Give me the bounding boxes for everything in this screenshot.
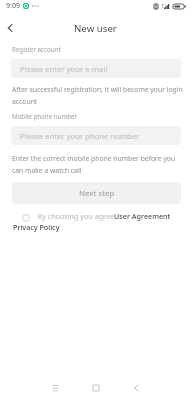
staticText: By choosing you agreeUser Agreement Priv… (13, 211, 179, 232)
staticText: New user (74, 22, 117, 35)
button[interactable]: Back (0, 18, 20, 38)
button[interactable]: Back (125, 377, 147, 399)
staticText: 9:09 (6, 1, 20, 11)
staticText: Register account (12, 45, 61, 53)
staticText: Enter the correct mobile phone number be… (12, 154, 184, 175)
button[interactable]: Next step (12, 182, 181, 204)
staticText: Please enter your e-mail (20, 64, 108, 74)
button[interactable]: Please enter your phone number (11, 126, 181, 145)
button[interactable]: Home (85, 377, 107, 399)
button[interactable]: Recent apps (44, 377, 66, 399)
staticText: After successful registration, it will b… (12, 85, 184, 106)
button[interactable]: Please enter your e-mail (11, 59, 181, 78)
staticText: 7 (161, 3, 164, 10)
staticText: Please enter your phone number (20, 131, 140, 141)
staticText: Mobile phone number (12, 112, 78, 120)
staticText: Next step (79, 188, 115, 199)
button[interactable]: Agree to User Agreement and Privacy Poli… (13, 211, 179, 232)
